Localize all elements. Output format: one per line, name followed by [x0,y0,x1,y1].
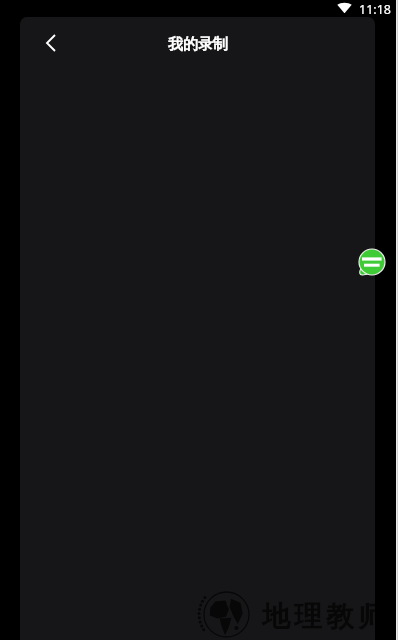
staticText: 地理教师 [260,599,375,634]
button[interactable]: Back [31,23,71,63]
staticText: 11:18 [359,1,391,18]
staticText: 我的录制 [168,35,228,54]
button[interactable]: Assistant [356,246,388,278]
